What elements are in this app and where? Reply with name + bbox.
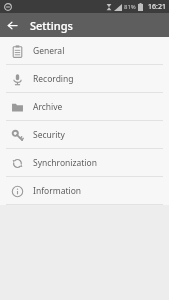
staticText: 81% <box>124 3 136 11</box>
button[interactable]: Back <box>0 13 24 37</box>
button[interactable]: Recording <box>0 65 169 92</box>
staticText: 16:21 <box>148 2 166 12</box>
staticText: Information <box>33 185 82 197</box>
staticText: Archive <box>33 101 63 113</box>
button[interactable]: Security <box>0 121 169 148</box>
staticText: Recording <box>33 73 74 85</box>
button[interactable]: Information <box>0 177 169 204</box>
button[interactable]: Synchronization <box>0 149 169 176</box>
button[interactable]: Archive <box>0 93 169 120</box>
staticText: Settings <box>30 18 73 33</box>
staticText: Security <box>33 129 65 141</box>
button[interactable]: General <box>0 37 169 64</box>
staticText: Synchronization <box>33 157 97 169</box>
staticText: General <box>33 45 65 57</box>
